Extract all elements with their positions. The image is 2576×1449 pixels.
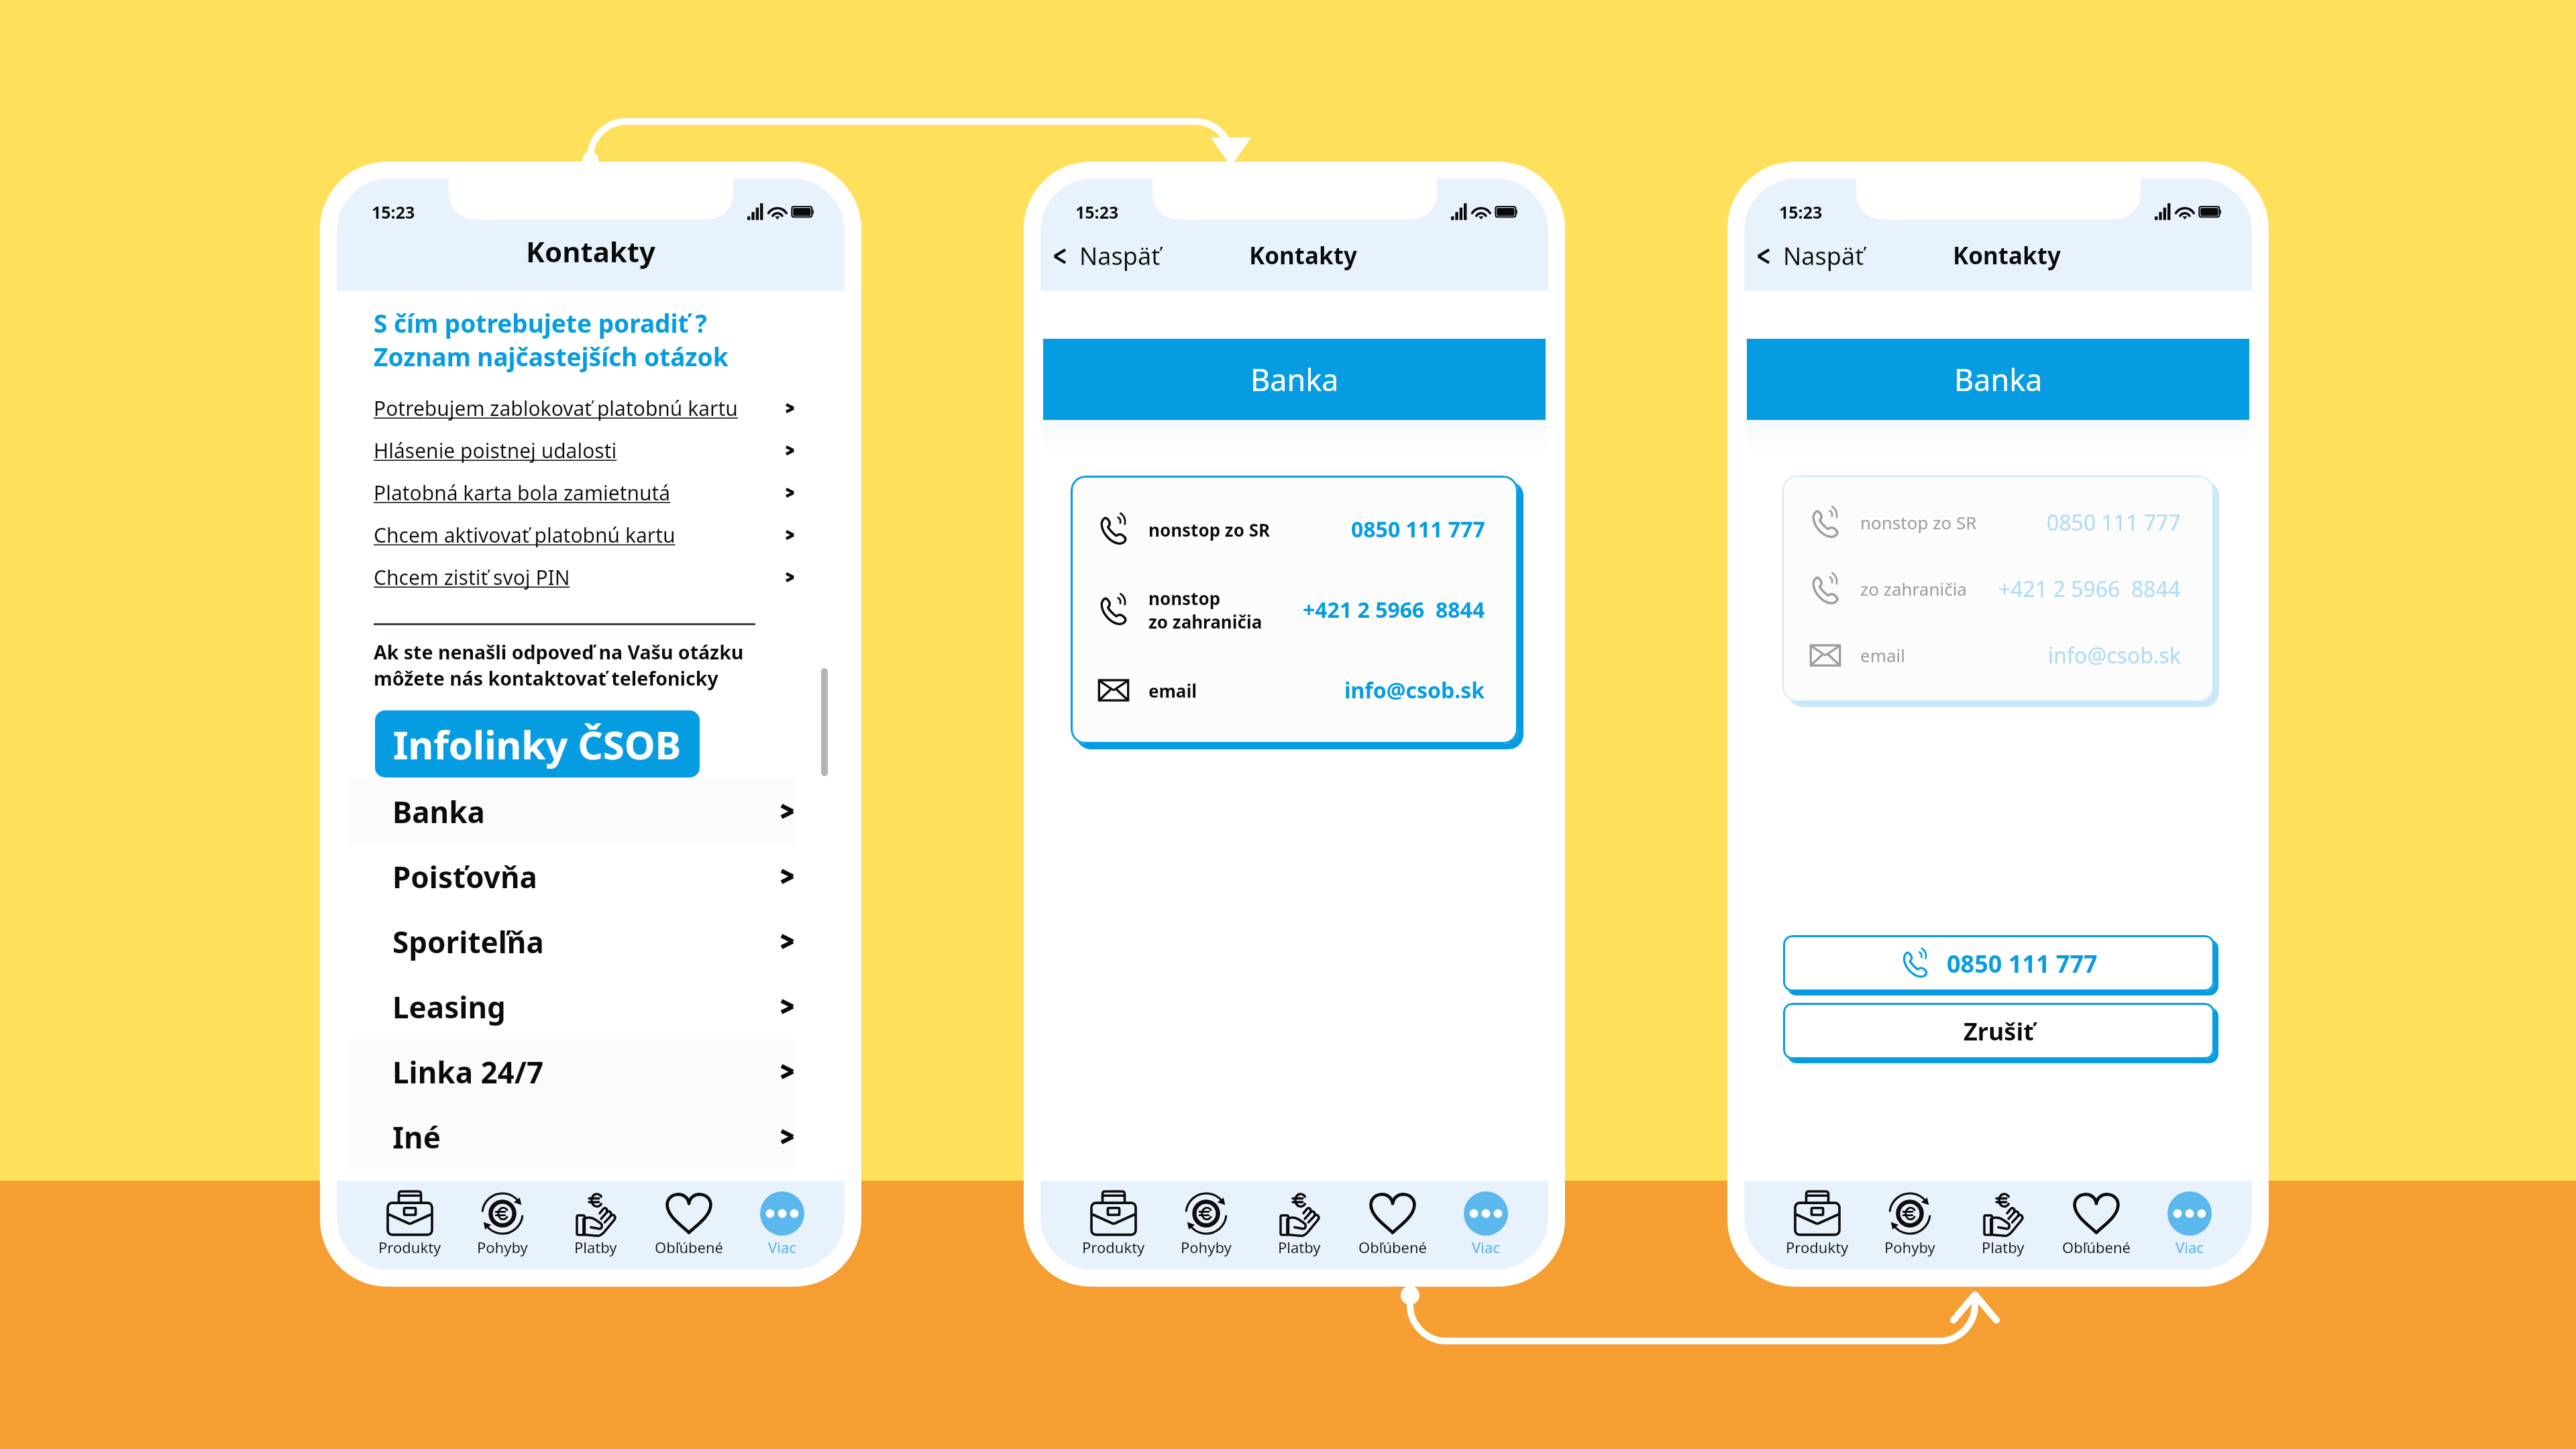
staticText: Pohyby (1884, 1237, 1935, 1257)
button[interactable]: Platby (1956, 1181, 2049, 1270)
staticText: Platby (1982, 1237, 2025, 1257)
button[interactable]: Chcem aktivovať platobnú kartu (337, 514, 845, 556)
staticText: Obľúbené (655, 1237, 723, 1257)
button[interactable]: Obľúbené (642, 1181, 735, 1270)
staticText: Infolinky ČSOB (393, 718, 682, 771)
button[interactable]: Leasing (337, 974, 845, 1039)
staticText: Naspäť (1783, 239, 1864, 272)
staticText: Pohyby (1181, 1237, 1232, 1257)
button[interactable]: Banka (1747, 339, 2249, 420)
staticText: Viac (768, 1237, 796, 1257)
button[interactable]: Poisťovňa (337, 844, 845, 909)
button[interactable]: Produkty (1067, 1181, 1160, 1270)
staticText: Platobná karta bola zamietnutá (374, 479, 671, 506)
button[interactable]: email (1071, 650, 1518, 731)
staticText: 15:23 (372, 201, 415, 223)
button[interactable]: Pohyby (1160, 1181, 1252, 1270)
staticText: Viac (1472, 1237, 1500, 1257)
staticText: info@csob.sk (2048, 641, 2181, 670)
staticText: Ak ste nenašli odpoveď na Vašu otázku (374, 639, 744, 665)
staticText: Hlásenie poistnej udalosti (374, 437, 617, 464)
staticText: Viac (2176, 1237, 2204, 1257)
button[interactable]: Banka (1043, 339, 1546, 420)
button[interactable]: Potrebujem zablokovať platobnú kartu (337, 387, 845, 429)
button[interactable]: Pohyby (456, 1181, 549, 1270)
button[interactable]: Obľúbené (1346, 1181, 1439, 1270)
button[interactable]: nonstop zo SR (1071, 489, 1518, 570)
staticText: Pohyby (477, 1237, 528, 1257)
staticText: Potrebujem zablokovať platobnú kartu (374, 394, 738, 422)
button[interactable]: Infolinky ČSOB (375, 710, 700, 777)
staticText: môžete nás kontaktovať telefonicky (374, 665, 718, 692)
staticText: Poisťovňa (392, 857, 537, 897)
staticText: Obľúbené (2062, 1237, 2131, 1257)
button[interactable]: Viac (735, 1181, 828, 1270)
button[interactable]: Sporiteľňa (337, 909, 845, 974)
staticText: 15:23 (1075, 201, 1119, 223)
button[interactable]: Obľúbené (2049, 1181, 2143, 1270)
staticText: 0850 111 777 (2047, 508, 2181, 537)
staticText: Sporiteľňa (392, 922, 544, 962)
staticText: email (1148, 679, 1197, 702)
button[interactable]: Hlásenie poistnej udalosti (337, 429, 845, 472)
staticText: email (1860, 643, 1905, 667)
staticText: Banka (1250, 359, 1339, 400)
staticText: Kontakty (526, 232, 656, 270)
button[interactable]: Pohyby (1864, 1181, 1956, 1270)
button[interactable]: email (1782, 622, 2214, 688)
staticText: 0850 111 777 (1351, 515, 1485, 544)
button[interactable]: Zrušiť (1783, 1003, 2214, 1059)
button[interactable]: Chcem zistiť svoj PIN (337, 556, 845, 598)
staticText: Produkty (378, 1237, 441, 1257)
staticText: 15:23 (1779, 201, 1823, 223)
staticText: Produkty (1786, 1237, 1849, 1257)
button[interactable]: zo zahraničia (1782, 555, 2214, 622)
staticText: Platby (574, 1237, 617, 1257)
staticText: Platby (1278, 1237, 1321, 1257)
button[interactable]: Naspäť (1744, 237, 1876, 287)
button[interactable]: Iné (337, 1104, 845, 1169)
staticText: zo zahraničia (1148, 610, 1263, 633)
button[interactable]: Produkty (364, 1181, 456, 1270)
button[interactable]: Produkty (1771, 1181, 1864, 1270)
button[interactable]: Platby (549, 1181, 642, 1270)
button[interactable]: nonstop zo SR (1782, 489, 2214, 555)
staticText: +421 2 5966 8844 (1303, 595, 1485, 625)
staticText: nonstop zo SR (1860, 511, 1977, 534)
staticText: Kontakty (1249, 239, 1357, 272)
staticText: zo zahraničia (1860, 577, 1967, 600)
staticText: 0850 111 777 (1947, 947, 2098, 980)
button[interactable]: Platobná karta bola zamietnutá (337, 472, 845, 514)
staticText: S čím potrebujete poradiť ? (374, 306, 707, 339)
button[interactable]: Viac (1439, 1181, 1532, 1270)
staticText: info@csob.sk (1344, 676, 1485, 705)
button[interactable]: Banka (337, 779, 845, 844)
staticText: nonstop zo SR (1148, 518, 1271, 541)
staticText: Iné (392, 1117, 441, 1157)
staticText: Chcem aktivovať platobnú kartu (374, 521, 676, 549)
button[interactable]: Naspäť (1040, 237, 1173, 287)
staticText: Naspäť (1079, 239, 1161, 272)
staticText: Banka (1954, 359, 2043, 400)
button[interactable]: Viac (2143, 1181, 2236, 1270)
button[interactable]: nonstop (1071, 570, 1518, 650)
staticText: Obľúbené (1358, 1237, 1427, 1257)
staticText: Leasing (392, 987, 506, 1027)
button[interactable]: 0850 111 777 (1783, 935, 2214, 991)
button[interactable]: Platby (1252, 1181, 1346, 1270)
staticText: +421 2 5966 8844 (1998, 574, 2181, 604)
button[interactable]: Linka 24/7 (337, 1039, 845, 1104)
staticText: Zrušiť (1964, 1015, 2034, 1048)
staticText: Produkty (1082, 1237, 1145, 1257)
staticText: nonstop (1148, 586, 1221, 610)
staticText: Zoznam najčastejších otázok (374, 339, 729, 373)
staticText: Banka (392, 792, 485, 832)
staticText: Linka 24/7 (392, 1052, 544, 1092)
staticText: Kontakty (1953, 239, 2061, 272)
staticText: Chcem zistiť svoj PIN (374, 563, 570, 591)
